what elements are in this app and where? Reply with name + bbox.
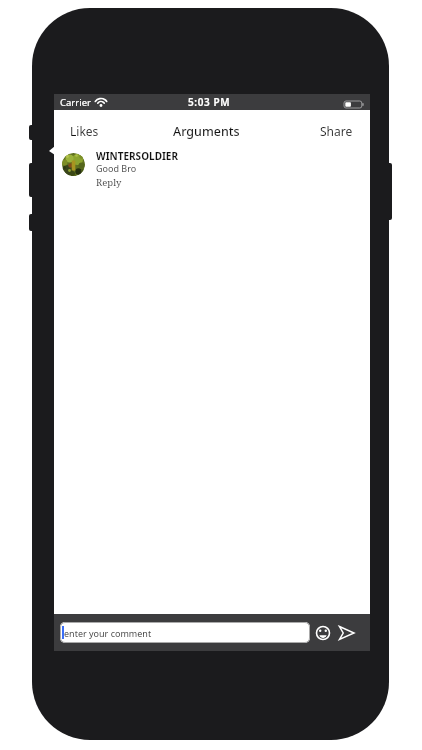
staticText: WINTERSOLDIER (96, 149, 178, 163)
button[interactable]: Share (320, 123, 353, 139)
button[interactable] (339, 625, 355, 641)
staticText: 5:03 PM (188, 95, 231, 109)
button[interactable]: WINTERSOLDIER (62, 153, 370, 195)
staticText: Good Bro (96, 162, 137, 174)
button[interactable]: Reply (96, 176, 122, 189)
staticText: Arguments (173, 123, 240, 140)
button[interactable]: Likes (70, 123, 99, 139)
staticText: enter your comment (64, 627, 152, 639)
button[interactable] (315, 625, 331, 641)
staticText: Carrier (60, 96, 91, 109)
button[interactable]: enter your comment (60, 622, 310, 643)
